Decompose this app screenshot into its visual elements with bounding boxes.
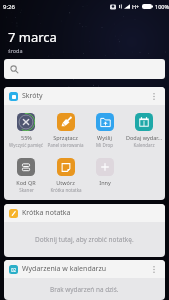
- button[interactable]: Inny: [85, 158, 124, 186]
- staticText: Panel sterowania: [47, 142, 84, 148]
- button[interactable]: Sprzątacz: [46, 113, 85, 148]
- staticText: Inny: [99, 179, 111, 186]
- button[interactable]: Więcej opcji: [148, 263, 160, 275]
- staticText: 55%: [21, 134, 32, 141]
- staticText: Wyślij: [97, 134, 112, 141]
- staticText: Wydarzenia w kalendarzu: [22, 264, 107, 274]
- staticText: Brak wydarzeń na dziś.: [50, 285, 119, 294]
- staticText: Skaner: [19, 187, 34, 193]
- staticText: Sprzątacz: [53, 134, 78, 141]
- button[interactable]: Krótka notatka: [4, 204, 165, 257]
- staticText: 7 marca: [8, 28, 57, 46]
- button[interactable]: Utwórz: [46, 158, 85, 193]
- staticText: Krótka notatka: [50, 187, 82, 193]
- staticText: Skróty: [22, 91, 43, 101]
- staticText: Dotknij tutaj, aby zrobić notatkę.: [35, 235, 134, 244]
- button[interactable]: 55%: [6, 113, 46, 148]
- staticText: Kalendarz: [133, 142, 155, 148]
- staticText: 9:26: [3, 3, 15, 11]
- staticText: Mi Drop: [96, 142, 113, 148]
- staticText: Utwórz: [56, 179, 75, 186]
- staticText: Krótka notatka: [22, 208, 71, 218]
- staticText: 02: [11, 267, 17, 273]
- staticText: środa: [8, 47, 23, 54]
- button[interactable]: Wyślij: [85, 113, 124, 148]
- staticText: H+: [132, 3, 140, 10]
- button[interactable]: Kod QR: [6, 158, 46, 193]
- button[interactable]: Więcej opcji: [148, 90, 160, 102]
- button[interactable]: Dodaj wydar…: [124, 113, 163, 148]
- staticText: Wyczyść pamięć: [9, 142, 43, 148]
- staticText: Kod QR: [16, 179, 36, 186]
- button[interactable]: Szukaj: [4, 59, 165, 79]
- staticText: 100%: [155, 3, 169, 10]
- staticText: Dodaj wydar…: [126, 134, 162, 141]
